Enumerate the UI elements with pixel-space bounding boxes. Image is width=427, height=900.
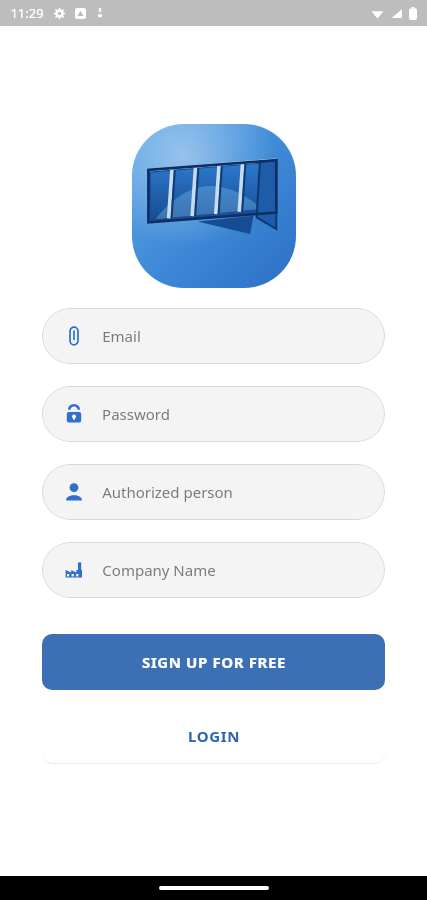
button[interactable]: Company Name: [42, 542, 385, 598]
button[interactable]: Email: [42, 308, 385, 364]
staticText: Company Name: [102, 560, 216, 580]
button[interactable]: SIGN UP FOR FREE: [42, 634, 385, 690]
staticText: Password: [102, 404, 170, 424]
staticText: Authorized person: [102, 482, 233, 502]
staticText: LOGIN: [188, 726, 240, 746]
button[interactable]: Authorized person: [42, 464, 385, 520]
button[interactable]: LOGIN: [42, 709, 385, 763]
staticText: SIGN UP FOR FREE: [142, 652, 286, 672]
staticText: Email: [102, 326, 141, 346]
staticText: 11:29: [10, 4, 44, 22]
button[interactable]: Password: [42, 386, 385, 442]
